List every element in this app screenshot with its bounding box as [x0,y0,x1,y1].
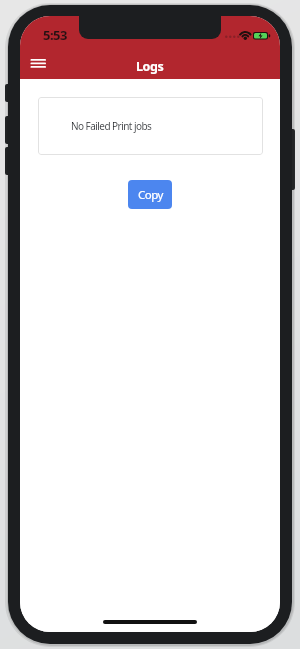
button[interactable]: No Failed Print jobs [38,97,263,155]
staticText: Logs [136,58,164,75]
staticText: Copy [138,187,163,203]
staticText: 5:53 [43,26,67,44]
button[interactable]: Copy [128,180,172,209]
staticText: No Failed Print jobs [71,119,152,133]
button[interactable] [24,51,52,76]
